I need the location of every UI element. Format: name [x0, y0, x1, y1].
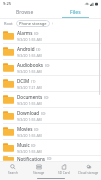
staticText: (1)	[31, 79, 36, 84]
button[interactable]: Download	[0, 108, 101, 124]
staticText: 9/3/20 1:55 AM	[17, 117, 42, 122]
staticText: (0)	[44, 95, 49, 100]
staticText: Browse	[16, 9, 34, 16]
button[interactable]: Android	[0, 44, 101, 60]
staticText: Android	[17, 46, 35, 52]
staticText: Alarms	[17, 30, 33, 36]
button[interactable]: Phone storage	[16, 20, 50, 27]
button[interactable]: Music	[0, 140, 101, 156]
button[interactable]: Audiobooks	[0, 60, 101, 76]
staticText: 9/3/20 1:55 AM	[17, 69, 42, 74]
staticText: 9/3/20 1:55 AM	[17, 101, 42, 106]
staticText: Storage	[33, 171, 45, 175]
button[interactable]: Search	[0, 162, 26, 176]
staticText: (0)	[34, 127, 39, 132]
staticText: Audiobooks	[17, 62, 44, 68]
button[interactable]: Documents	[0, 92, 101, 108]
staticText: Cloud storage	[78, 171, 99, 175]
staticText: Download	[17, 110, 40, 116]
button[interactable]: Storage	[26, 162, 51, 176]
staticText: (0)	[45, 63, 50, 68]
staticText: SD Card	[58, 171, 70, 175]
button[interactable]: Notifications	[0, 156, 101, 161]
staticText: Files	[70, 9, 81, 16]
staticText: 9/3/20 1:55 AM	[17, 53, 42, 58]
button[interactable]: SD Card	[51, 162, 76, 176]
staticText: Music	[17, 142, 30, 148]
staticText: 9/3/20 1:55 AM	[17, 149, 42, 154]
staticText: Search	[8, 171, 18, 175]
staticText: 9/3/20 1:55 AM	[17, 37, 42, 42]
staticText: (0)	[31, 143, 36, 148]
button[interactable]: Movies	[0, 124, 101, 140]
staticText: Root	[4, 21, 13, 26]
staticText: Movies	[17, 126, 33, 132]
staticText: 9/3/20 7:21 AM	[17, 85, 42, 90]
button[interactable]: Browse	[0, 7, 50, 18]
button[interactable]: Root	[3, 20, 14, 27]
staticText: (0)	[34, 31, 39, 36]
staticText: (0)	[47, 156, 52, 161]
staticText: 9:25	[3, 1, 11, 6]
button[interactable]: Alarms	[0, 28, 101, 44]
button[interactable]: DCIM	[0, 76, 101, 92]
staticText: (3)	[36, 47, 41, 52]
button[interactable]: Cloud storage	[76, 162, 101, 176]
staticText: Phone storage	[19, 21, 47, 26]
staticText: (0)	[41, 111, 46, 116]
staticText: 9/3/20 1:55 AM	[17, 133, 42, 138]
staticText: DCIM	[17, 78, 30, 84]
button[interactable]: Files	[50, 7, 101, 18]
staticText: Notifications	[17, 156, 46, 161]
staticText: Documents	[17, 94, 43, 100]
